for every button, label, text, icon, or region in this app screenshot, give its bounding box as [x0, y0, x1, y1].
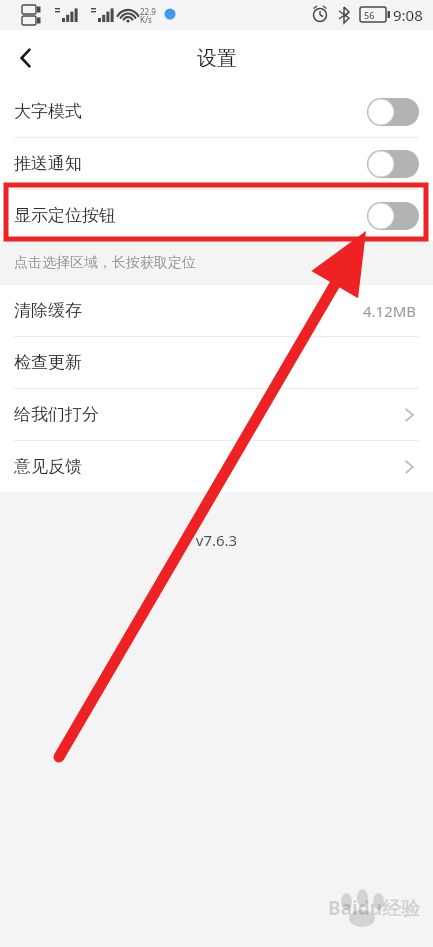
button[interactable]: Toggle	[367, 98, 419, 126]
button[interactable]: Toggle	[367, 202, 419, 230]
button[interactable]: Back	[0, 32, 52, 84]
staticText: 给我们打分	[14, 404, 99, 425]
staticText: 56	[364, 9, 375, 21]
button[interactable]: 意见反馈	[0, 441, 433, 492]
button[interactable]: 给我们打分	[0, 389, 433, 440]
staticText: 推送通知	[14, 153, 82, 174]
staticText: Baidu经验	[328, 895, 421, 921]
staticText: 检查更新	[14, 352, 82, 373]
staticText: 4.12MB	[363, 301, 417, 321]
staticText: 意见反馈	[14, 456, 82, 477]
staticText: 9:08	[393, 5, 423, 25]
button[interactable]: 推送通知	[0, 138, 433, 189]
button[interactable]: 清除缓存	[0, 285, 433, 336]
staticText: 设置	[197, 46, 237, 71]
staticText: 22.9 K/s	[140, 6, 156, 25]
button[interactable]: 显示定位按钮	[0, 190, 433, 241]
button[interactable]: 大字模式	[0, 86, 433, 137]
button[interactable]: 检查更新	[0, 337, 433, 388]
staticText: 清除缓存	[14, 300, 82, 321]
button[interactable]: Toggle	[367, 150, 419, 178]
staticText: 点击选择区域，长按获取定位	[14, 254, 196, 272]
staticText: 显示定位按钮	[14, 205, 116, 226]
staticText: 大字模式	[14, 101, 82, 122]
staticText: v7.6.3	[0, 530, 433, 550]
